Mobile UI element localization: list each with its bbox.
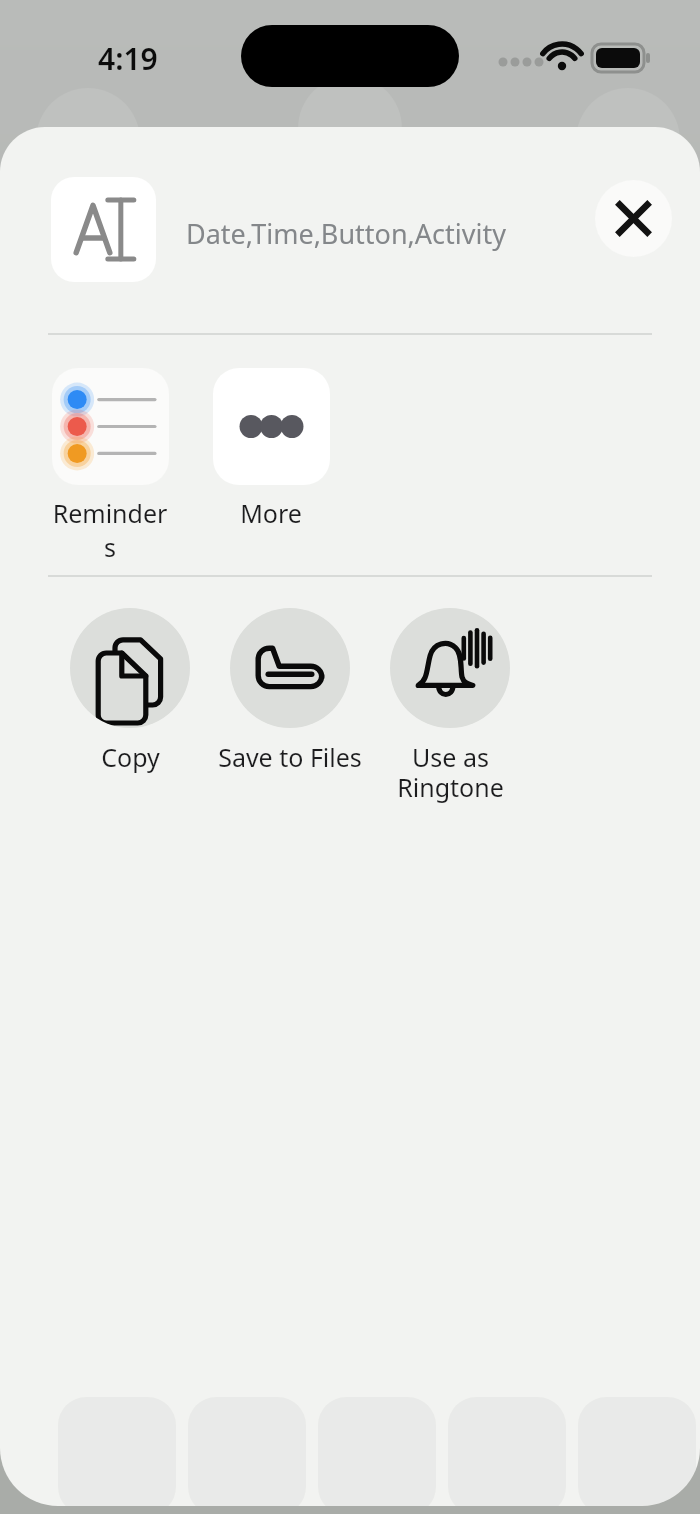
button[interactable]: More — [212, 368, 330, 530]
button[interactable]: Copy — [50, 608, 210, 774]
staticText: Save to Files — [218, 740, 362, 774]
staticText: 4:19 — [98, 38, 158, 79]
button[interactable] — [51, 177, 156, 282]
staticText: More — [240, 496, 302, 530]
staticText: Reminders — [51, 496, 169, 564]
staticText: Use as Ringtone — [397, 740, 504, 805]
staticText: Copy — [101, 740, 160, 774]
button[interactable]: Use as Ringtone — [370, 608, 530, 805]
staticText: Date,Time,Button,Activity — [186, 215, 506, 252]
button[interactable]: Save to Files — [210, 608, 370, 774]
button[interactable]: Close — [595, 180, 672, 257]
button[interactable]: Reminders — [51, 368, 169, 564]
